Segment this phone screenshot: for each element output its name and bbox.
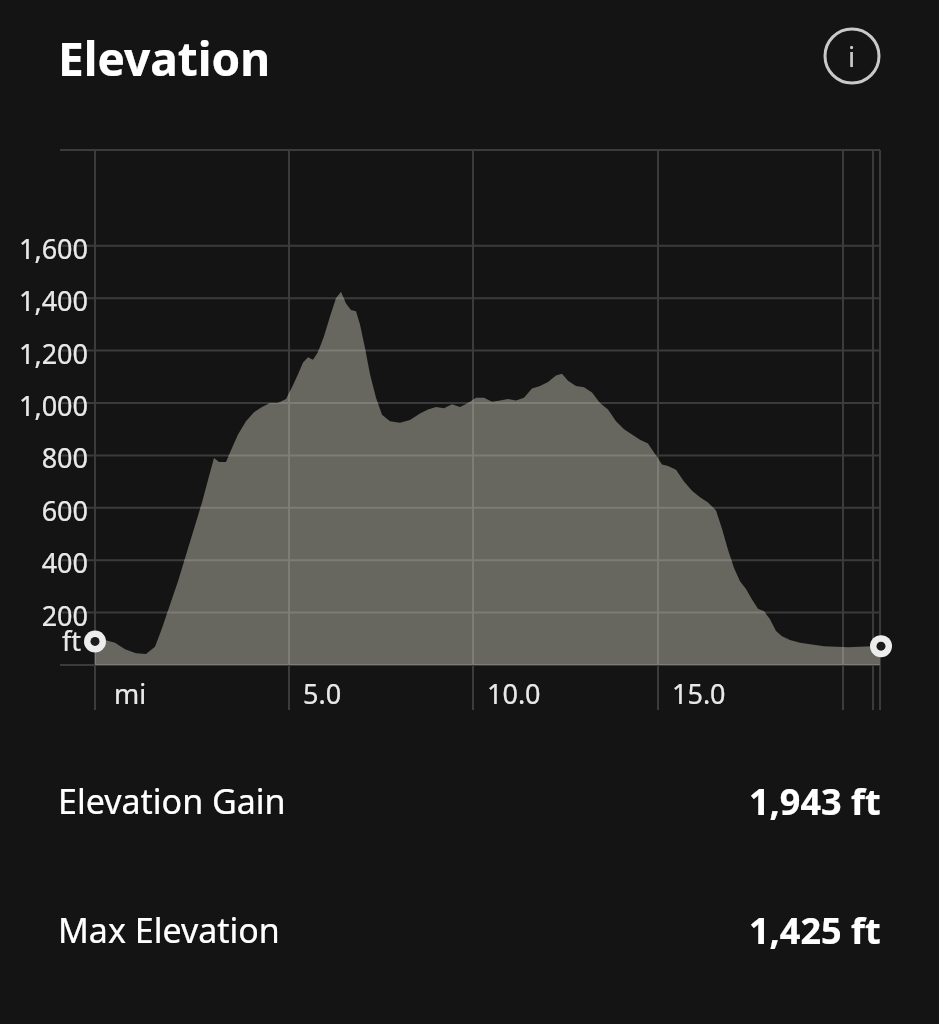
staticText: 5.0 — [303, 675, 342, 712]
staticText: 1,425 ft — [749, 906, 881, 955]
staticText: Elevation Gain — [58, 778, 286, 824]
staticText: 10.0 — [487, 675, 541, 712]
staticText: Elevation — [58, 27, 271, 90]
button[interactable]: Elevation Gain — [0, 770, 939, 832]
staticText: 1,600 — [8, 230, 88, 267]
staticText: mi — [114, 675, 147, 712]
staticText: 200 — [8, 597, 88, 634]
staticText: 15.0 — [672, 675, 726, 712]
button[interactable]: Max Elevation — [0, 899, 939, 961]
staticText: 800 — [8, 439, 88, 476]
staticText: 400 — [8, 544, 88, 581]
staticText: 1,200 — [8, 335, 88, 372]
staticText: ft — [62, 622, 82, 659]
staticText: 1,943 ft — [749, 777, 881, 826]
staticText: 600 — [8, 492, 88, 529]
staticText: i — [848, 37, 856, 75]
button[interactable]: Information — [822, 26, 882, 86]
staticText: 1,000 — [8, 387, 88, 424]
staticText: Max Elevation — [58, 907, 280, 953]
staticText: 1,400 — [8, 282, 88, 319]
